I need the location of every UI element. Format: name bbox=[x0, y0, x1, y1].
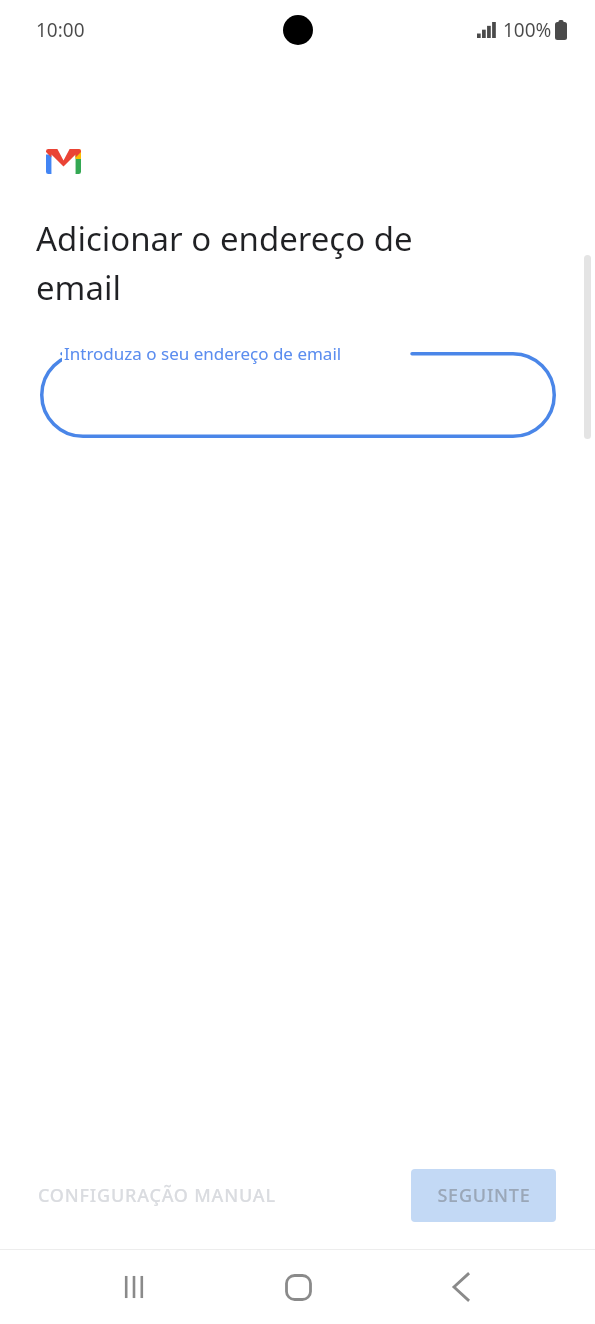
button[interactable]: Recents bbox=[104, 1257, 164, 1317]
staticText: Introduza o seu endereço de email bbox=[64, 342, 342, 365]
staticText: Adicionar o endereço de email bbox=[36, 216, 506, 309]
staticText: 10:00 bbox=[36, 17, 85, 43]
button[interactable]: Introduza o seu endereço de email bbox=[40, 352, 556, 438]
staticText: SEGUINTE bbox=[437, 1183, 531, 1208]
staticText: CONFIGURAÇÃO MANUAL bbox=[38, 1183, 276, 1208]
staticText: 100% bbox=[503, 17, 552, 43]
button[interactable]: SEGUINTE bbox=[411, 1169, 556, 1222]
button[interactable]: CONFIGURAÇÃO MANUAL bbox=[22, 1173, 292, 1218]
button[interactable]: Back bbox=[431, 1257, 491, 1317]
button[interactable]: Home bbox=[268, 1257, 328, 1317]
